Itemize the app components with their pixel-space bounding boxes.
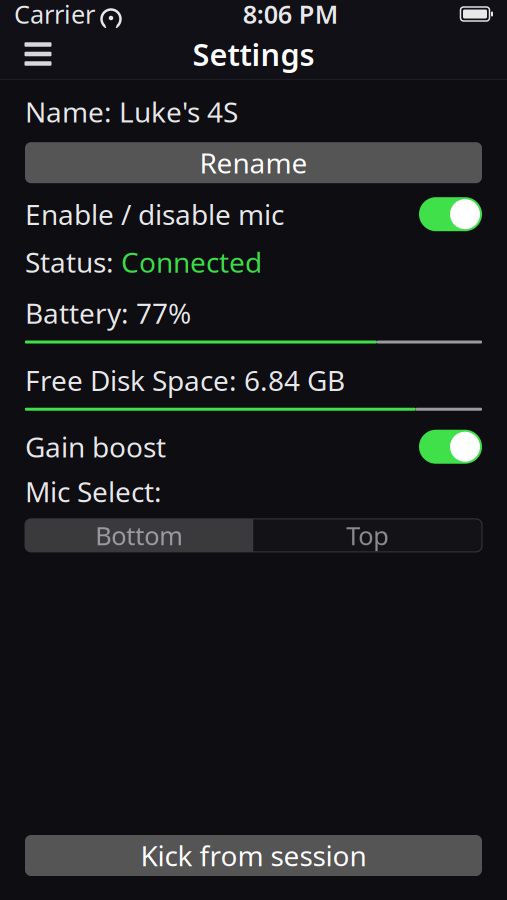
staticText: Mic Select: bbox=[25, 473, 162, 510]
staticText: Settings bbox=[192, 34, 314, 74]
staticText: Status: bbox=[25, 243, 121, 280]
staticText: Top bbox=[346, 519, 389, 552]
button[interactable]: Bottom bbox=[25, 519, 253, 552]
button[interactable]: Top bbox=[253, 519, 482, 552]
staticText: Gain boost bbox=[25, 428, 166, 465]
staticText: Kick from session bbox=[140, 837, 366, 874]
staticText: Battery: 77% bbox=[25, 294, 191, 332]
staticText: Connected bbox=[121, 243, 262, 280]
staticText: Carrier bbox=[14, 0, 95, 31]
staticText: Enable / disable mic bbox=[25, 196, 284, 233]
staticText: 8:06 PM bbox=[243, 0, 339, 31]
staticText: Free Disk Space: 6.84 GB bbox=[25, 361, 345, 399]
staticText: Bottom bbox=[95, 519, 183, 552]
button[interactable]: Toggle bbox=[419, 430, 482, 464]
button[interactable]: Rename bbox=[25, 142, 482, 183]
button[interactable]: Menu bbox=[12, 31, 64, 77]
button[interactable]: Toggle bbox=[419, 197, 482, 231]
button[interactable]: Kick from session bbox=[25, 835, 482, 876]
staticText: Rename bbox=[199, 144, 307, 181]
staticText: Name: Luke's 4S bbox=[25, 93, 238, 130]
